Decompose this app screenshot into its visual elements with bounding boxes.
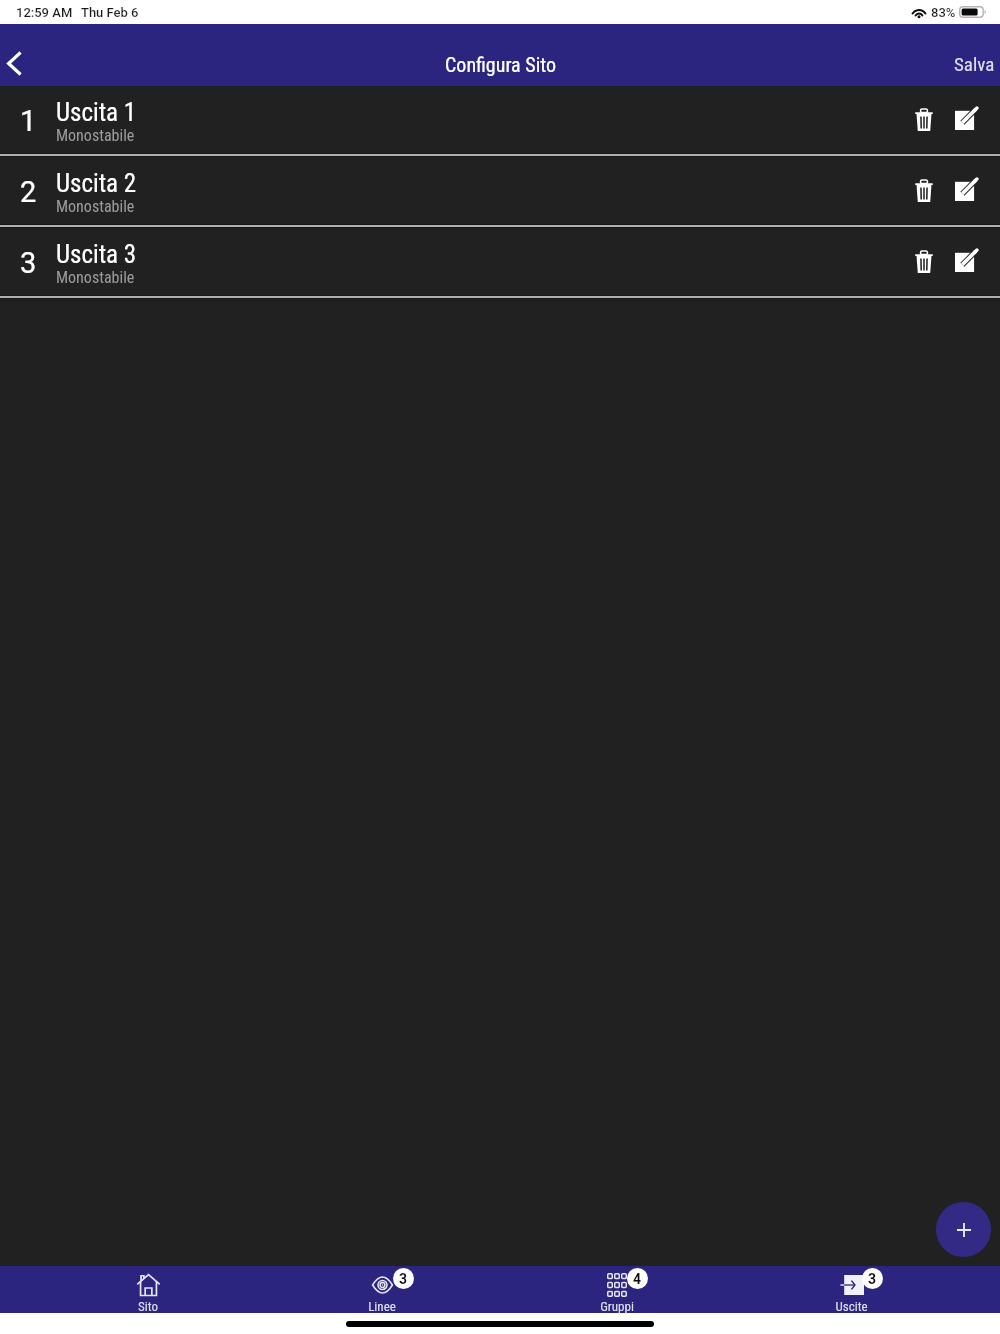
staticText: Sito [138,1299,158,1314]
button[interactable]: 3 [0,228,1000,295]
staticText: Thu Feb 6 [81,5,139,20]
button[interactable]: 4 [499,1266,734,1313]
staticText: Monostabile [56,197,135,216]
button[interactable]: Elimina [902,169,946,213]
button[interactable]: Modifica [944,238,988,282]
staticText: 4 [633,1271,642,1287]
button[interactable]: Elimina [902,98,946,142]
staticText: 12:59 AM [16,5,73,20]
staticText: Linee [368,1299,396,1314]
button[interactable]: Modifica [944,96,988,140]
staticText: Uscita 3 [56,240,137,269]
button[interactable]: Salva [938,45,1000,83]
button[interactable]: 2 [0,157,1000,224]
button[interactable]: Aggiungi [936,1202,991,1257]
button[interactable]: 3 [734,1266,969,1313]
staticText: Monostabile [56,126,135,145]
staticText: Gruppi [600,1299,634,1314]
staticText: Uscite [835,1299,868,1314]
staticText: 3 [399,1271,408,1287]
staticText: Monostabile [56,268,135,287]
button[interactable]: Sito [31,1266,265,1313]
button[interactable]: Indietro [0,43,34,83]
button[interactable]: Elimina [902,240,946,284]
button[interactable]: 3 [265,1266,499,1313]
staticText: Configura Sito [445,53,556,76]
staticText: Uscita 1 [56,98,137,127]
button[interactable]: 1 [0,86,1000,153]
button[interactable]: Modifica [944,167,988,211]
staticText: Uscita 2 [56,169,137,198]
staticText: 83% [931,5,956,20]
staticText: 1 [20,104,37,138]
staticText: 3 [868,1271,877,1287]
staticText: Salva [954,53,995,75]
staticText: 2 [20,175,37,209]
staticText: 3 [20,246,37,280]
